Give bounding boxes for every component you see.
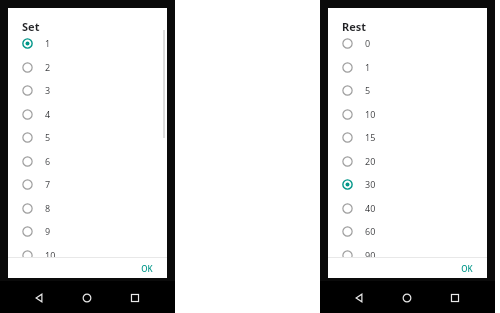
staticText: 60	[365, 225, 376, 237]
button[interactable]: 7	[8, 172, 167, 196]
button[interactable]: 2	[8, 55, 167, 79]
button[interactable]: Back	[31, 290, 47, 306]
button[interactable]: 8	[8, 196, 167, 220]
button[interactable]: 40	[328, 196, 487, 220]
staticText: 2	[45, 61, 51, 73]
button[interactable]: 1	[328, 55, 487, 79]
button[interactable]: 10	[328, 102, 487, 126]
staticText: 5	[365, 84, 371, 96]
button[interactable]: Back	[351, 290, 367, 306]
staticText: OK	[461, 263, 473, 274]
staticText: 40	[365, 202, 376, 214]
staticText: 0	[365, 37, 371, 49]
button[interactable]: Recent apps	[127, 290, 143, 306]
staticText: 15	[365, 131, 376, 143]
button[interactable]: 30	[328, 172, 487, 196]
staticText: Rest	[342, 19, 367, 34]
button[interactable]: Home	[399, 290, 415, 306]
staticText: 4	[45, 108, 51, 120]
button[interactable]: 6	[8, 149, 167, 173]
button[interactable]: 5	[8, 125, 167, 149]
staticText: 3	[45, 84, 51, 96]
staticText: 8	[45, 202, 51, 214]
button[interactable]: Home	[79, 290, 95, 306]
button[interactable]: OK	[455, 261, 479, 276]
staticText: 1	[365, 61, 371, 73]
button[interactable]: 4	[8, 102, 167, 126]
staticText: OK	[141, 263, 153, 274]
staticText: 9	[45, 225, 51, 237]
staticText: 5	[45, 131, 51, 143]
staticText: 90	[365, 249, 376, 261]
staticText: 1	[45, 37, 51, 49]
staticText: 6	[45, 155, 51, 167]
button[interactable]: 1	[8, 31, 167, 55]
button[interactable]: 20	[328, 149, 487, 173]
button[interactable]: 15	[328, 125, 487, 149]
button[interactable]: 9	[8, 219, 167, 243]
staticText: 30	[365, 178, 376, 190]
button[interactable]: 0	[328, 31, 487, 55]
button[interactable]: Recent apps	[447, 290, 463, 306]
button[interactable]: 5	[328, 78, 487, 102]
button[interactable]: 10	[8, 243, 167, 267]
staticText: 20	[365, 155, 376, 167]
button[interactable]: 90	[328, 243, 487, 267]
button[interactable]: OK	[135, 261, 159, 276]
staticText: 10	[365, 108, 376, 120]
button[interactable]: 3	[8, 78, 167, 102]
staticText: Set	[22, 19, 40, 34]
button[interactable]: 60	[328, 219, 487, 243]
staticText: 10	[45, 249, 56, 261]
staticText: 7	[45, 178, 51, 190]
